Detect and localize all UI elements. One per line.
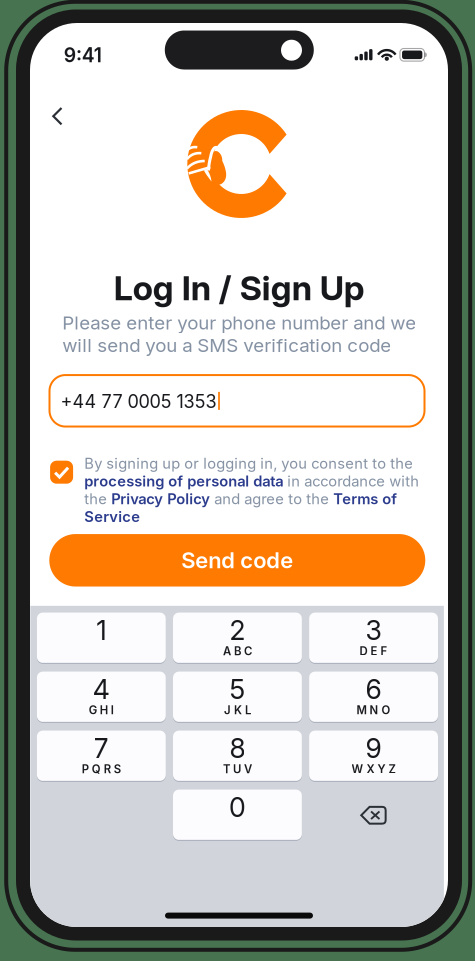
staticText: M N O <box>357 703 391 717</box>
staticText: 7 <box>94 732 109 765</box>
staticText: W X Y Z <box>352 762 396 776</box>
staticText: 4 <box>93 673 110 706</box>
staticText: 6 <box>366 673 382 706</box>
staticText: 5 <box>229 673 245 706</box>
staticText: Log In / Sign Up <box>114 267 365 308</box>
button[interactable] <box>309 790 438 841</box>
button[interactable]: 8 <box>173 731 302 782</box>
button[interactable]: 6 <box>309 672 438 723</box>
staticText: T U V <box>223 762 252 776</box>
button[interactable] <box>45 101 76 132</box>
staticText: D E F <box>360 644 388 658</box>
staticText: 8 <box>229 732 245 765</box>
button[interactable]: 0 <box>173 790 302 841</box>
button[interactable]: 7 <box>37 731 166 782</box>
button[interactable]: 5 <box>173 672 302 723</box>
button[interactable] <box>50 461 73 484</box>
staticText: 2 <box>229 614 245 647</box>
button[interactable]: Send code <box>49 534 425 586</box>
button[interactable]: 9 <box>309 731 438 782</box>
staticText: +44 77 0005 1353 <box>60 390 216 412</box>
staticText: Please enter your phone number and we wi… <box>62 311 416 357</box>
staticText: 9:41 <box>64 43 102 67</box>
staticText: Send code <box>181 547 293 574</box>
button[interactable]: 4 <box>37 672 166 723</box>
staticText: P Q R S <box>82 762 121 776</box>
staticText: 1 <box>96 614 106 647</box>
staticText: 9 <box>366 732 382 765</box>
button[interactable]: 2 <box>173 613 302 664</box>
staticText: 0 <box>229 791 246 824</box>
staticText: By signing up or logging in, you consent… <box>84 454 419 525</box>
staticText: J K L <box>224 703 251 717</box>
staticText: 3 <box>366 614 382 647</box>
staticText: A B C <box>223 644 252 658</box>
button[interactable]: 3 <box>309 613 438 664</box>
staticText: G H I <box>89 703 114 717</box>
button[interactable]: 1 <box>37 613 166 664</box>
